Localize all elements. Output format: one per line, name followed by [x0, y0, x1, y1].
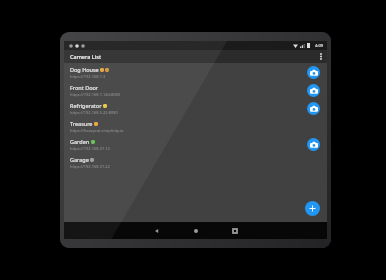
button[interactable]: Open Front Door camera: [307, 84, 320, 97]
button[interactable]: Dog House: [64, 63, 327, 81]
button[interactable]: More options: [315, 50, 327, 63]
staticText: https://192.168.31.22: [70, 164, 110, 169]
button[interactable]: Add camera: [305, 201, 320, 216]
staticText: Garden: [70, 138, 90, 145]
staticText: https://192.168.31.12: [70, 146, 110, 151]
button[interactable]: Open Garden camera: [307, 138, 320, 151]
staticText: Treasure: [70, 120, 93, 127]
button[interactable]: Refrigerator: [64, 99, 327, 117]
staticText: Dog House: [70, 66, 99, 73]
button[interactable]: Home: [190, 225, 202, 237]
staticText: Camera List: [70, 53, 101, 60]
staticText: https://heavycat.simplicity.io: [70, 128, 124, 133]
staticText: https://192.168.5.22:8080: [70, 110, 118, 115]
staticText: Refrigerator: [70, 102, 102, 109]
staticText: Front Door: [70, 84, 99, 91]
button[interactable]: Front Door: [64, 81, 327, 99]
staticText: 4:09: [315, 43, 323, 48]
staticText: https://192.168.1.144:8080: [70, 92, 121, 97]
button[interactable]: Recent apps: [229, 225, 241, 237]
button[interactable]: Garage: [64, 153, 327, 171]
staticText: https://192.168.1.3: [70, 74, 106, 79]
button[interactable]: Open Refrigerator camera: [307, 102, 320, 115]
button[interactable]: Treasure: [64, 117, 327, 135]
button[interactable]: Garden: [64, 135, 327, 153]
button[interactable]: Open Dog House camera: [307, 66, 320, 79]
button[interactable]: Back: [151, 225, 163, 237]
staticText: Garage: [70, 156, 89, 163]
